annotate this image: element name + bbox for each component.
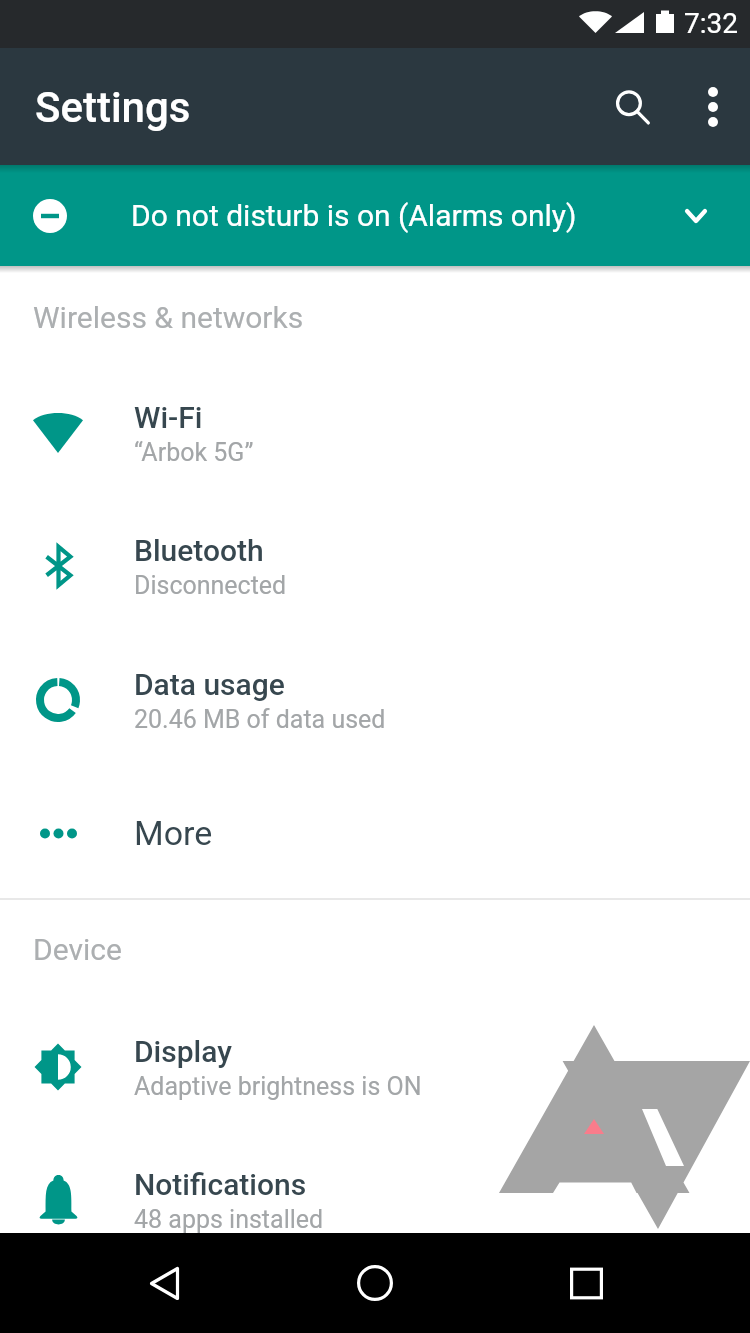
staticText: Device xyxy=(33,932,122,967)
button[interactable]: Data usage xyxy=(0,634,750,766)
button[interactable]: Recent apps xyxy=(541,1238,631,1328)
staticText: Data usage xyxy=(134,667,285,702)
staticText: Wireless & networks xyxy=(33,300,304,335)
staticText: 7:32 xyxy=(684,7,738,40)
staticText: Do not disturb is on (Alarms only) xyxy=(131,198,577,233)
staticText: 20.46 MB of data used xyxy=(134,705,386,734)
button[interactable]: More options xyxy=(670,64,750,150)
button[interactable]: Search xyxy=(589,64,675,150)
staticText: More xyxy=(134,813,213,853)
button[interactable]: Wi-Fi xyxy=(0,367,750,499)
button[interactable]: More xyxy=(0,777,750,889)
button[interactable]: Do not disturb is on (Alarms only) xyxy=(0,165,750,266)
button[interactable]: Bluetooth xyxy=(0,500,750,632)
staticText: Display xyxy=(134,1034,232,1069)
button[interactable]: Home xyxy=(330,1238,420,1328)
staticText: Notifications xyxy=(134,1167,307,1202)
button[interactable]: Expand xyxy=(656,176,736,256)
button[interactable]: Display xyxy=(0,1001,750,1133)
staticText: 48 apps installed xyxy=(134,1205,324,1234)
staticText: “Arbok 5G” xyxy=(134,438,254,467)
staticText: Adaptive brightness is ON xyxy=(134,1072,422,1101)
staticText: Settings xyxy=(35,83,191,132)
staticText: Bluetooth xyxy=(134,533,264,568)
button[interactable]: Back xyxy=(119,1238,209,1328)
button[interactable]: Notifications xyxy=(0,1134,750,1266)
staticText: Wi-Fi xyxy=(134,400,203,435)
staticText: Disconnected xyxy=(134,571,287,600)
